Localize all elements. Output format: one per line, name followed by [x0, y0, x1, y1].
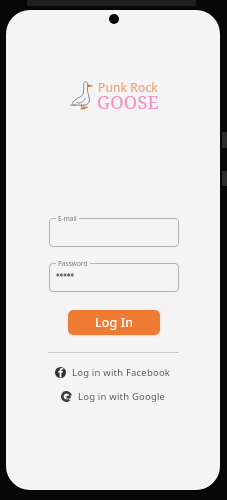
- staticText: Password: [58, 259, 88, 268]
- staticText: Punk Rock: [98, 79, 158, 95]
- staticText: Log in with Facebook: [72, 366, 171, 379]
- staticText: E-mail: [58, 214, 77, 223]
- staticText: Log In: [95, 314, 134, 331]
- button[interactable]: Log In: [68, 310, 160, 335]
- staticText: GOOSE: [97, 90, 160, 115]
- staticText: Log in with Google: [78, 390, 166, 403]
- button[interactable]: Log in with Facebook: [55, 363, 185, 381]
- button[interactable]: Log in with Google: [61, 387, 191, 405]
- button[interactable]: [49, 263, 179, 292]
- button[interactable]: [49, 218, 179, 247]
